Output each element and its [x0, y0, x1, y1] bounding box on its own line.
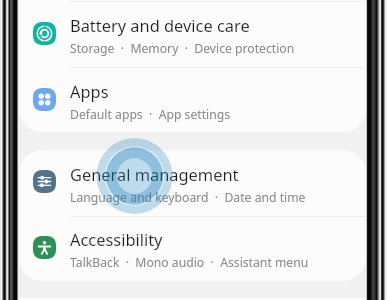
staticText: General management [70, 163, 239, 185]
staticText: Default apps · App settings [70, 106, 231, 123]
staticText: Accessibility [70, 228, 163, 250]
staticText: Apps [70, 80, 109, 102]
staticText: TalkBack · Mono audio · Assistant menu [70, 254, 309, 271]
button[interactable]: General management [19, 150, 366, 216]
button[interactable]: Apps [19, 68, 366, 132]
button[interactable]: Accessibility [19, 217, 366, 280]
button[interactable]: Battery and device care [19, 2, 366, 67]
staticText: Storage · Memory · Device protection [70, 40, 295, 57]
staticText: Language and keyboard · Date and time [70, 189, 306, 206]
staticText: Battery and device care [70, 14, 250, 36]
